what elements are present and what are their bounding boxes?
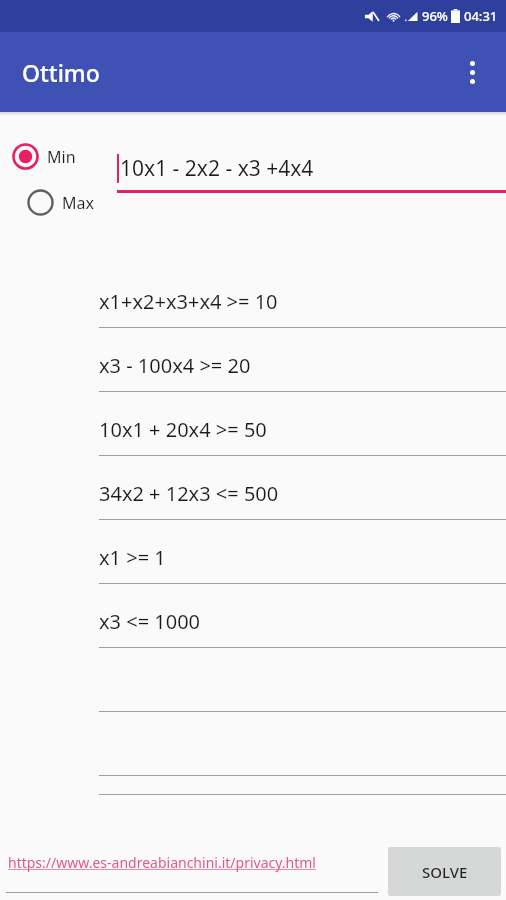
staticText: x1+x2+x3+x4 >= 10 <box>99 288 278 315</box>
button[interactable]: Max <box>27 189 94 216</box>
staticText: 10x1 + 20x4 >= 50 <box>99 416 267 443</box>
button[interactable]: x3 - 100x4 >= 20 <box>99 350 506 410</box>
button[interactable]: x3 <= 1000 <box>99 606 506 666</box>
staticText: Ottimo <box>22 57 100 88</box>
button[interactable] <box>99 670 506 730</box>
button[interactable]: Min <box>12 143 76 170</box>
button[interactable]: 10x1 + 20x4 >= 50 <box>99 414 506 474</box>
staticText: 96% <box>422 7 448 25</box>
button[interactable]: 10x1 - 2x2 - x3 +4x4 <box>117 151 506 193</box>
button[interactable]: https://www.es-andreabianchini.it/privac… <box>6 849 378 893</box>
staticText: Max <box>62 192 94 214</box>
button[interactable] <box>99 734 506 794</box>
button[interactable]: More options <box>450 50 494 94</box>
button[interactable]: x1 >= 1 <box>99 542 506 602</box>
staticText: 10x1 - 2x2 - x3 +4x4 <box>120 154 314 183</box>
staticText: x3 - 100x4 >= 20 <box>99 352 251 379</box>
button[interactable]: x1+x2+x3+x4 >= 10 <box>99 286 506 346</box>
staticText: SOLVE <box>422 862 468 882</box>
staticText: x1 >= 1 <box>99 544 166 571</box>
staticText: 34x2 + 12x3 <= 500 <box>99 480 279 507</box>
staticText: https://www.es-andreabianchini.it/privac… <box>8 853 316 872</box>
staticText: 04:31 <box>464 7 498 25</box>
button[interactable]: SOLVE <box>388 847 501 896</box>
button[interactable]: 34x2 + 12x3 <= 500 <box>99 478 506 538</box>
staticText: x3 <= 1000 <box>99 608 201 635</box>
staticText: Min <box>47 146 76 168</box>
